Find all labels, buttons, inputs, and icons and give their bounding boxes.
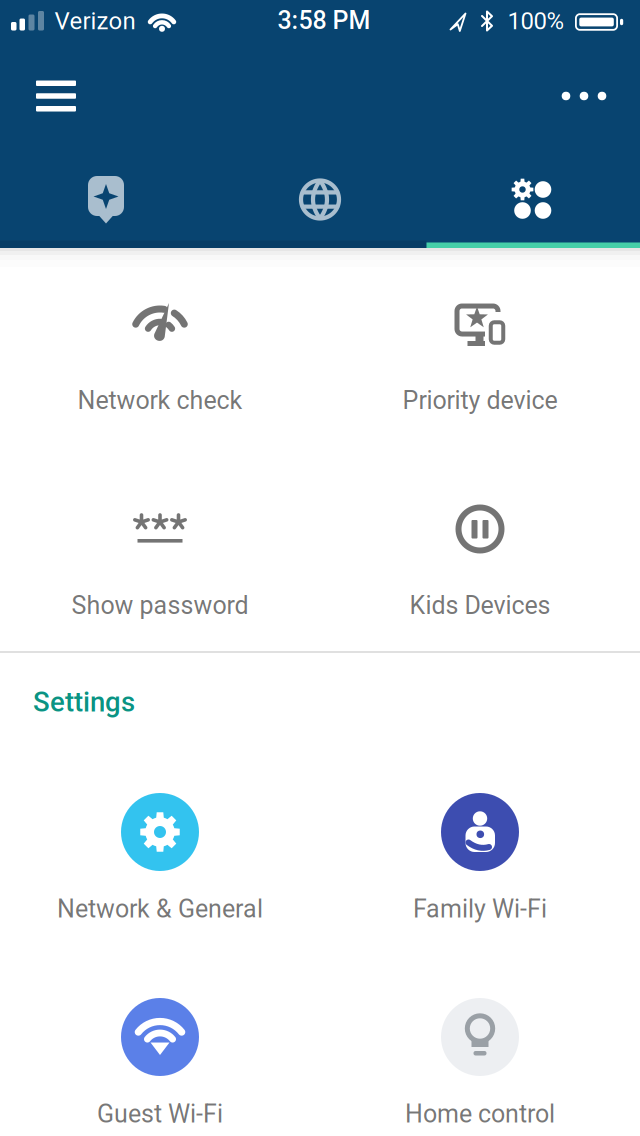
staticText: Network & General — [57, 894, 263, 924]
staticText: Show password — [71, 591, 248, 620]
staticText: Settings — [33, 686, 135, 718]
staticText: Family Wi-Fi — [413, 894, 547, 924]
staticText: Network check — [77, 386, 242, 415]
staticText: Verizon — [54, 7, 135, 35]
staticText: 100% — [507, 7, 564, 35]
staticText: Priority device — [402, 386, 557, 415]
staticText: Home control — [405, 1099, 555, 1129]
staticText: Guest Wi-Fi — [97, 1099, 223, 1129]
staticText: Kids Devices — [409, 591, 550, 620]
staticText: 3:58 PM — [277, 6, 370, 35]
